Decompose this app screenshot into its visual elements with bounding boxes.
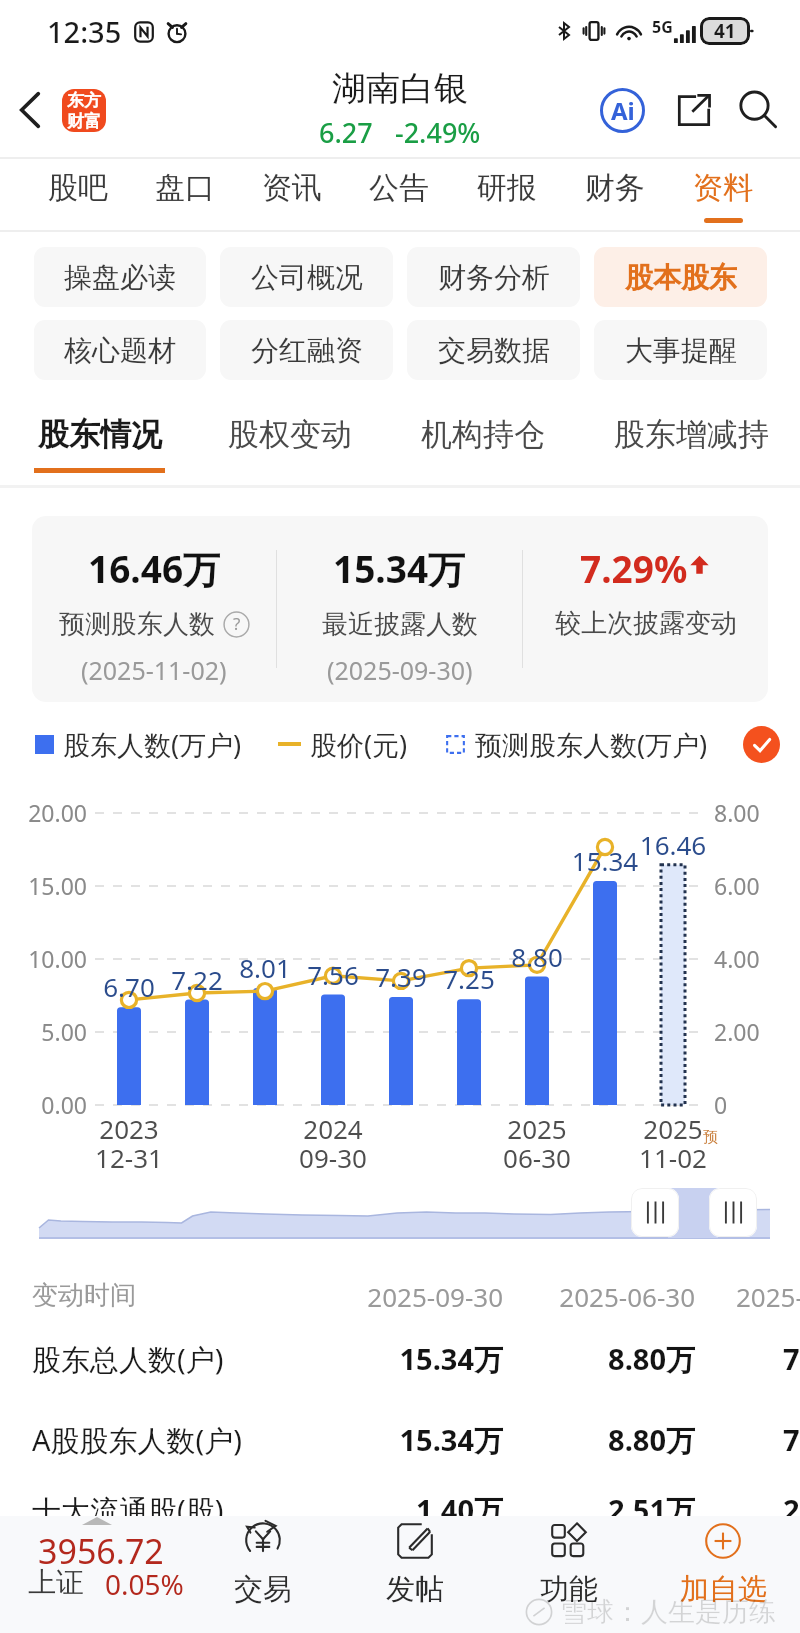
staticText: 7.22 — [147, 962, 247, 997]
staticText: 6.27 — [319, 114, 373, 151]
staticText: 盘口 — [155, 169, 215, 207]
button[interactable]: 操盘必读 — [34, 247, 206, 307]
staticText: 11-02 — [613, 1140, 733, 1175]
staticText: 16.46 — [623, 827, 723, 862]
staticText: 2025 — [477, 1111, 597, 1146]
staticText: 7.25 — [419, 961, 519, 996]
staticText: 3956.72 — [38, 1528, 164, 1574]
staticText: 最近披露人数 — [322, 608, 478, 641]
staticText: 06-30 — [477, 1140, 597, 1175]
button[interactable]: 加自选 — [647, 1516, 799, 1633]
staticText: -2.49% — [395, 114, 481, 151]
button[interactable]: 公告 — [345, 159, 453, 230]
staticText: ? — [233, 612, 241, 635]
staticText: 东方 — [67, 90, 101, 111]
button[interactable]: 机构持仓 — [420, 390, 545, 485]
staticText: 12-31 — [69, 1140, 189, 1175]
button[interactable]: 研报 — [453, 159, 561, 230]
staticText: (2025-11-02) — [81, 653, 227, 687]
staticText: 6.70 — [79, 969, 179, 1004]
staticText: 8.80万 — [400, 1420, 695, 1460]
staticText: 预测股东人数 — [59, 608, 215, 641]
staticText: 15.34万 — [200, 1339, 503, 1379]
staticText: 6.00 — [714, 870, 794, 901]
button[interactable]: 大事提醒 — [594, 320, 767, 380]
staticText: 股东情况 — [38, 415, 162, 454]
staticText: 财务 — [585, 169, 645, 207]
staticText: (2025-09-30) — [327, 653, 473, 687]
staticText: 公告 — [369, 169, 429, 207]
staticText: 上证 — [28, 1565, 84, 1600]
button[interactable]: 资料 — [669, 159, 777, 230]
staticText: 12:35 — [47, 12, 122, 51]
button[interactable]: 盘口 — [131, 159, 238, 230]
staticText: 5.00 — [0, 1016, 87, 1047]
button[interactable]: 交易数据 — [407, 320, 580, 380]
button[interactable]: Back — [5, 85, 55, 135]
staticText: 湖南白银 — [332, 67, 468, 110]
staticText: 股权变动 — [228, 415, 352, 454]
staticText: 7.29% — [580, 543, 688, 593]
staticText: 7 — [783, 1420, 800, 1459]
staticText: 变动时间 — [32, 1279, 362, 1312]
staticText: 15.34万 — [333, 543, 466, 594]
button[interactable]: 股权变动 — [227, 390, 352, 485]
button[interactable]: 资讯 — [238, 159, 345, 230]
staticText: 4.00 — [714, 943, 794, 974]
staticText: Ai — [611, 94, 635, 127]
staticText: 20.00 — [0, 797, 87, 828]
staticText: 交易 — [234, 1571, 292, 1608]
staticText: 资讯 — [262, 169, 322, 207]
staticText: 研报 — [477, 169, 537, 207]
button[interactable]: 发帖 — [339, 1516, 491, 1633]
staticText: 2024 — [273, 1111, 393, 1146]
staticText: 8.00 — [714, 797, 794, 828]
staticText: 7.39 — [351, 959, 451, 994]
button[interactable]: Range handle — [709, 1188, 757, 1237]
staticText: 09-30 — [273, 1140, 393, 1175]
staticText: 股东增减持 — [614, 415, 769, 454]
staticText: 财富 — [67, 111, 101, 132]
staticText: 股价(元) — [310, 726, 408, 763]
staticText: 41 — [714, 18, 736, 44]
button[interactable]: 财务分析 — [407, 247, 580, 307]
button[interactable]: 交易 — [187, 1516, 339, 1633]
staticText: 公司概况 — [251, 260, 363, 295]
button[interactable]: Share — [669, 85, 719, 135]
staticText: 2025 — [613, 1111, 733, 1146]
staticText: 1.40万 — [200, 1490, 503, 1530]
button[interactable]: Search — [733, 85, 783, 135]
button[interactable]: 功能 — [493, 1516, 645, 1633]
button[interactable]: 分红融资 — [220, 320, 393, 380]
button[interactable]: 股吧 — [24, 159, 131, 230]
staticText: 2 — [783, 1490, 800, 1529]
staticText: 大事提醒 — [625, 333, 737, 368]
staticText: 10.00 — [0, 943, 87, 974]
button[interactable]: East Money logo — [62, 89, 106, 132]
button[interactable]: AI assistant — [597, 85, 647, 135]
button[interactable]: 股东增减持 — [612, 390, 770, 485]
button[interactable]: 股本股东 — [594, 247, 767, 307]
button[interactable]: 股东情况 — [34, 390, 165, 485]
staticText: 8.01 — [215, 950, 315, 985]
staticText: 机构持仓 — [421, 415, 545, 454]
staticText: 功能 — [540, 1571, 598, 1608]
staticText: 2025-09-30 — [200, 1279, 503, 1314]
staticText: 十大流通股(股) — [32, 1490, 362, 1530]
button[interactable]: 公司概况 — [220, 247, 393, 307]
button[interactable]: 核心题材 — [34, 320, 206, 380]
staticText: 股东人数(万户) — [63, 726, 242, 763]
staticText: 财务分析 — [438, 260, 550, 295]
button[interactable]: Range handle — [631, 1188, 679, 1237]
staticText: 较上次披露变动 — [555, 607, 737, 640]
button[interactable]: 财务 — [561, 159, 669, 230]
button[interactable]: Confirm — [743, 726, 780, 763]
staticText: 8.80 — [487, 939, 587, 974]
staticText: 15.34万 — [200, 1420, 503, 1460]
staticText: 交易数据 — [438, 333, 550, 368]
staticText: 预 — [703, 1128, 718, 1147]
staticText: 0.00 — [0, 1089, 87, 1120]
staticText: 股本股东 — [625, 260, 737, 295]
staticText: A股股东人数(户) — [32, 1420, 362, 1460]
staticText: 2.00 — [714, 1016, 794, 1047]
